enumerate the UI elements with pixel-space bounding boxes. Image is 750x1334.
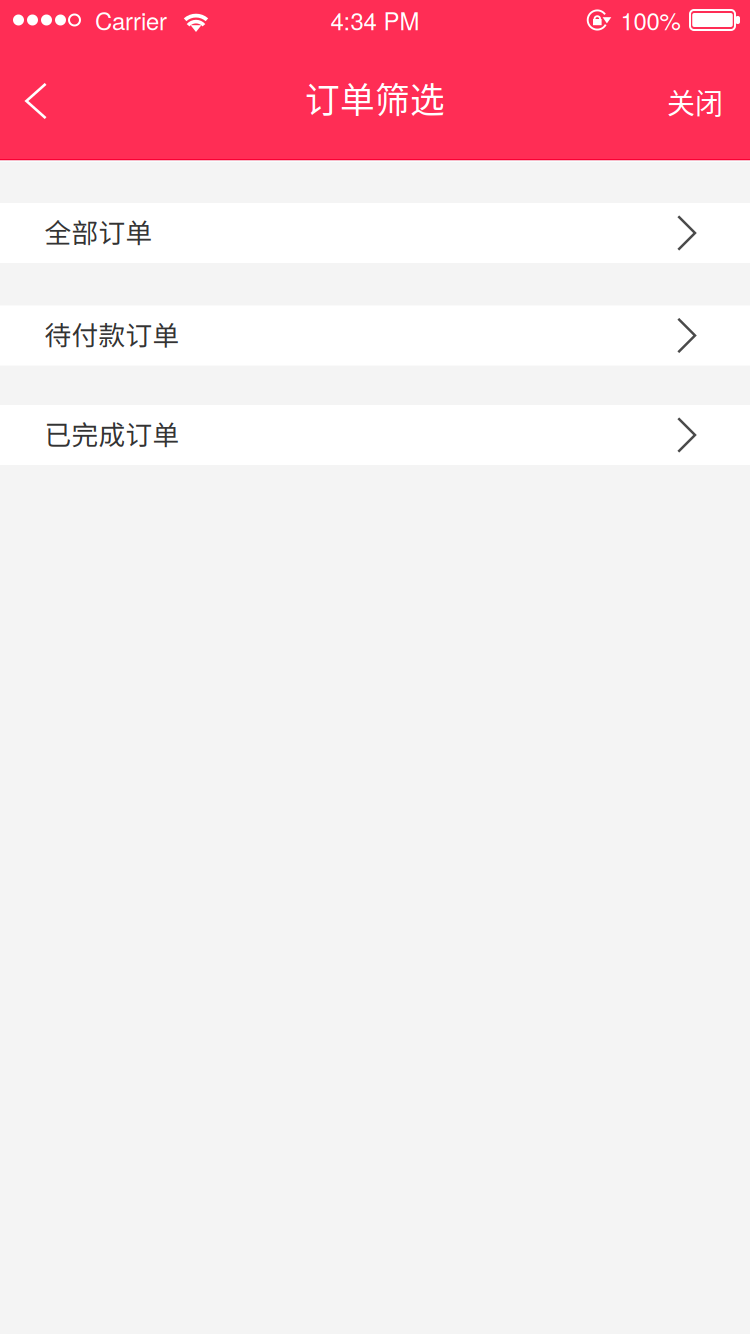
button[interactable]: 待付款订单 — [0, 305, 750, 365]
button[interactable]: 关闭 — [649, 60, 741, 138]
staticText: 全部订单 — [44, 212, 152, 250]
staticText: 订单筛选 — [305, 73, 445, 123]
staticText: 已完成订单 — [44, 414, 179, 452]
staticText: 100% — [620, 3, 680, 37]
staticText: 待付款订单 — [44, 314, 179, 353]
staticText: Carrier — [95, 3, 167, 37]
button[interactable]: 已完成订单 — [0, 405, 750, 465]
button[interactable]: Back — [0, 60, 72, 138]
button[interactable]: 全部订单 — [0, 203, 750, 263]
staticText: 关闭 — [667, 81, 723, 122]
staticText: 4:34 PM — [330, 3, 419, 37]
